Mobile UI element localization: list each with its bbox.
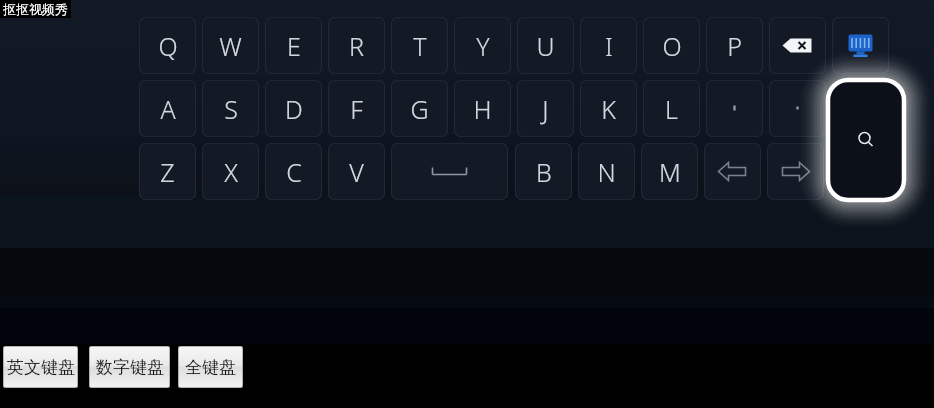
staticText: X [224, 155, 238, 189]
button[interactable]: V [328, 143, 385, 200]
button[interactable]: R [328, 17, 385, 74]
button[interactable]: X [202, 143, 259, 200]
button[interactable]: J [517, 80, 574, 137]
button[interactable]: Y [454, 17, 511, 74]
staticText: Q [158, 29, 178, 63]
staticText: H [473, 92, 492, 126]
button[interactable]: Comma [706, 80, 763, 137]
button[interactable]: F [328, 80, 385, 137]
staticText: T [413, 29, 427, 63]
button[interactable]: M [641, 143, 698, 200]
button[interactable]: L [643, 80, 700, 137]
button[interactable]: Q [139, 17, 196, 74]
staticText: L [665, 92, 678, 126]
staticText: S [224, 92, 238, 126]
button[interactable]: Switch keyboard [832, 17, 889, 74]
button[interactable]: Backspace [769, 17, 826, 74]
staticText: P [727, 29, 742, 63]
staticText: Z [160, 155, 175, 189]
button[interactable]: S [202, 80, 259, 137]
button[interactable]: K [580, 80, 637, 137]
staticText: R [349, 29, 364, 63]
button[interactable]: N [578, 143, 635, 200]
button[interactable]: D [265, 80, 322, 137]
button[interactable]: T [391, 17, 448, 74]
button[interactable]: Space [391, 143, 508, 200]
staticText: C [286, 155, 302, 189]
button[interactable]: E [265, 17, 322, 74]
staticText: 英文键盘 [7, 357, 75, 378]
button[interactable]: U [517, 17, 574, 74]
staticText: V [349, 155, 364, 189]
staticText: 数字键盘 [96, 357, 164, 378]
button[interactable]: 英文键盘 [3, 346, 78, 388]
button[interactable]: 数字键盘 [89, 346, 170, 388]
staticText: G [410, 92, 429, 126]
button[interactable]: H [454, 80, 511, 137]
staticText: F [350, 92, 363, 126]
staticText: K [601, 92, 616, 126]
button[interactable]: W [202, 17, 259, 74]
staticText: D [285, 92, 303, 126]
staticText: 抠抠视频秀 [3, 1, 68, 17]
staticText: B [536, 155, 552, 189]
staticText: 全键盘 [185, 357, 236, 378]
staticText: E [287, 29, 301, 63]
button[interactable]: A [139, 80, 196, 137]
staticText: Y [476, 29, 490, 63]
staticText: M [659, 155, 681, 189]
button[interactable]: P [706, 17, 763, 74]
button[interactable]: Search [812, 64, 920, 216]
staticText: I [605, 29, 613, 63]
button[interactable]: G [391, 80, 448, 137]
button[interactable]: Period [769, 80, 826, 137]
staticText: J [542, 92, 549, 126]
staticText: U [536, 29, 555, 63]
button[interactable]: C [265, 143, 322, 200]
staticText: W [219, 29, 242, 63]
button[interactable]: Move cursor right [767, 143, 824, 200]
staticText: N [597, 155, 616, 189]
staticText: A [160, 92, 176, 126]
button[interactable]: 全键盘 [178, 346, 243, 388]
staticText: O [662, 29, 682, 63]
button[interactable]: O [643, 17, 700, 74]
button[interactable]: Move cursor left [704, 143, 761, 200]
button[interactable]: I [580, 17, 637, 74]
button[interactable]: Z [139, 143, 196, 200]
button[interactable]: B [515, 143, 572, 200]
